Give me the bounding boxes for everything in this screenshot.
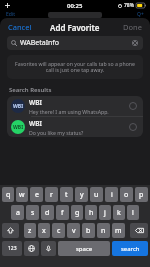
staticText: 78% (124, 2, 134, 9)
button[interactable]: j (99, 205, 111, 220)
staticText: r (50, 190, 53, 200)
button[interactable]: e (30, 187, 43, 202)
staticText: v (72, 226, 76, 236)
button[interactable]: Change keyboard language (24, 241, 39, 256)
button[interactable]: b (82, 223, 95, 238)
staticText: WBI (13, 103, 24, 110)
button[interactable]: m (112, 223, 125, 238)
button[interactable]: WBI (7, 117, 143, 137)
button[interactable]: c (52, 223, 65, 238)
button[interactable]: q (2, 187, 14, 202)
button[interactable]: Cancel (0, 19, 40, 35)
staticText: 123 (8, 245, 17, 252)
staticText: Q+ (137, 11, 144, 18)
staticText: e (35, 190, 39, 200)
staticText: u (94, 190, 99, 200)
button[interactable]: d (41, 205, 54, 220)
button[interactable]: h (85, 205, 97, 220)
button[interactable]: g (71, 205, 83, 220)
button[interactable]: space (58, 241, 110, 256)
staticText: Favorites will appear on your calls tab … (13, 60, 137, 74)
staticText: Add Favorite (50, 22, 100, 33)
staticText: q (6, 190, 11, 200)
button[interactable]: Select WBI (127, 100, 139, 112)
button[interactable]: w (16, 187, 28, 202)
button[interactable]: WBI (7, 96, 143, 116)
staticText: j (104, 208, 106, 218)
button[interactable]: i (105, 187, 118, 202)
staticText: d (45, 208, 50, 218)
staticText: WBI (13, 124, 24, 131)
button[interactable]: Select WBI (127, 121, 139, 133)
button[interactable]: 123 (2, 241, 22, 256)
button[interactable]: k (113, 205, 125, 220)
button[interactable]: Done (115, 19, 150, 35)
staticText: z (28, 226, 32, 236)
staticText: f (61, 208, 64, 218)
staticText: Done (123, 22, 142, 32)
button[interactable]: Shift (2, 223, 19, 238)
button[interactable]: o (120, 187, 133, 202)
staticText: Hey there! I am using WhatsApp. (29, 108, 109, 115)
staticText: p (139, 190, 144, 200)
button[interactable]: v (67, 223, 80, 238)
staticText: k (117, 208, 121, 218)
button[interactable]: a (11, 205, 24, 220)
staticText: t (65, 190, 68, 200)
button[interactable]: f (56, 205, 69, 220)
staticText: i (111, 190, 113, 200)
staticText: Search Results (9, 86, 52, 94)
button[interactable]: Backspace (130, 223, 148, 238)
button[interactable]: WABetaInfo (7, 36, 143, 50)
staticText: s (31, 208, 35, 218)
button[interactable]: search (112, 241, 148, 256)
button[interactable]: x (38, 223, 50, 238)
staticText: space (76, 245, 93, 253)
staticText: Do you like my status? (29, 129, 84, 136)
staticText: g (75, 208, 80, 218)
staticText: Cancel (8, 22, 32, 32)
staticText: y (80, 190, 84, 200)
button[interactable]: p (135, 187, 148, 202)
staticText: Edit (6, 11, 15, 18)
staticText: 00:25 (67, 2, 83, 10)
staticText: o (124, 190, 129, 200)
button[interactable]: r (45, 187, 58, 202)
staticText: WBI (29, 98, 42, 107)
staticText: search (121, 245, 140, 253)
staticText: WBI (29, 119, 42, 128)
button[interactable]: u (90, 187, 103, 202)
staticText: m (115, 226, 122, 236)
staticText: h (89, 208, 94, 218)
button[interactable]: Voice input (41, 241, 56, 256)
staticText: WABetaInfo (20, 38, 131, 48)
staticText: l (132, 208, 134, 218)
button[interactable]: y (75, 187, 88, 202)
staticText: x (42, 226, 46, 236)
button[interactable]: s (26, 205, 39, 220)
button[interactable]: z (24, 223, 36, 238)
staticText: n (101, 226, 106, 236)
button[interactable]: t (60, 187, 73, 202)
staticText: b (86, 226, 91, 236)
staticText: a (16, 208, 20, 218)
button[interactable]: Clear search (131, 39, 139, 47)
button[interactable]: n (97, 223, 110, 238)
button[interactable]: l (127, 205, 139, 220)
staticText: c (57, 226, 61, 236)
staticText: w (19, 190, 25, 200)
